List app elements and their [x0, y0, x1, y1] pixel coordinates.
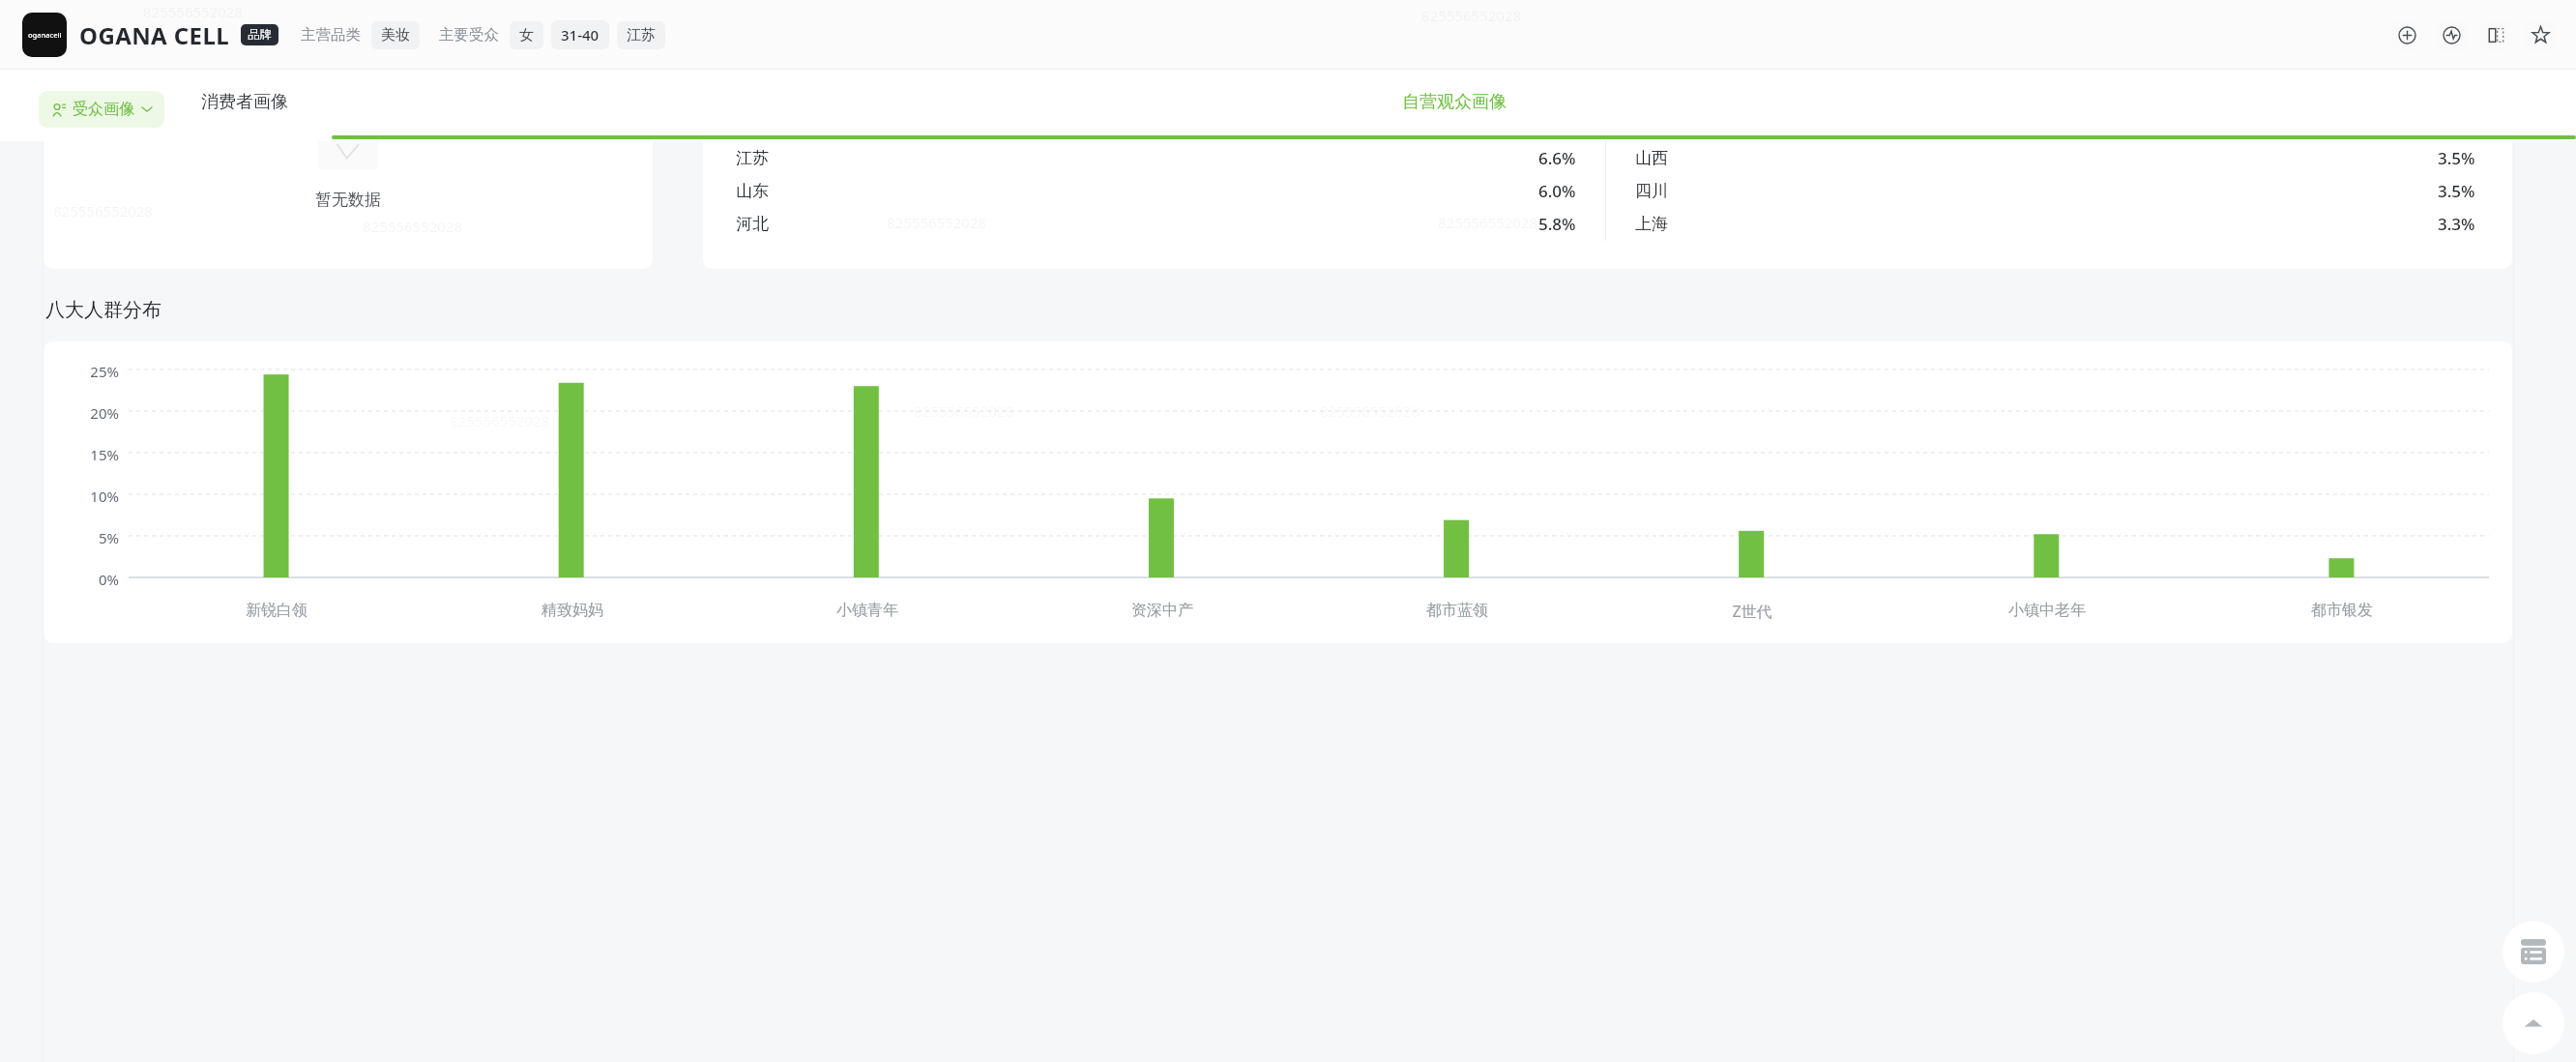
- button[interactable]: Add: [2391, 19, 2423, 51]
- staticText: 0%: [67, 570, 119, 589]
- staticText: 3.5%: [2438, 147, 2475, 169]
- staticText: 825556552028: [450, 411, 549, 430]
- button[interactable]: Compare: [2480, 19, 2512, 51]
- staticText: 资深中产: [1131, 601, 1193, 620]
- staticText: 上海: [1635, 214, 1668, 234]
- button[interactable]: Back to top: [2503, 992, 2564, 1054]
- button[interactable]: Trend: [2436, 19, 2468, 51]
- staticText: 自营观众画像: [1402, 91, 1507, 113]
- staticText: 主营品类: [301, 25, 361, 44]
- staticText: 825556552028: [1421, 6, 1521, 25]
- staticText: 825556552028: [914, 401, 1013, 421]
- staticText: 小镇中老年: [2008, 601, 2086, 620]
- staticText: OGANA CELL: [79, 19, 230, 51]
- button[interactable]: 美妆: [371, 21, 420, 49]
- button[interactable]: 受众画像: [39, 91, 164, 128]
- staticText: 10%: [67, 487, 119, 506]
- staticText: 3.3%: [2438, 213, 2475, 235]
- staticText: 825556552028: [1320, 401, 1420, 421]
- staticText: 6.6%: [1538, 147, 1576, 169]
- staticText: 825556552028: [53, 201, 153, 221]
- staticText: 15%: [67, 445, 119, 464]
- staticText: 消费者画像: [201, 91, 288, 113]
- staticText: 河北: [736, 214, 769, 234]
- staticText: oganacell: [28, 30, 62, 40]
- staticText: 品牌: [248, 27, 272, 43]
- button[interactable]: Favorite: [2525, 19, 2557, 51]
- button[interactable]: Catalog: [2503, 921, 2564, 983]
- staticText: 825556552028: [1438, 213, 1537, 232]
- staticText: 小镇青年: [836, 601, 898, 620]
- staticText: 受众画像: [73, 100, 134, 119]
- staticText: 5%: [67, 528, 119, 547]
- button[interactable]: 自营观众画像: [332, 91, 2576, 139]
- staticText: 江苏: [627, 26, 656, 44]
- staticText: 3.5%: [2438, 180, 2475, 202]
- staticText: 美妆: [381, 26, 410, 44]
- staticText: 四川: [1635, 181, 1668, 201]
- staticText: 山西: [1635, 148, 1668, 168]
- staticText: 20%: [67, 403, 119, 423]
- staticText: 山东: [736, 181, 769, 201]
- staticText: 25%: [67, 362, 119, 381]
- staticText: 6.0%: [1538, 180, 1576, 202]
- staticText: 精致妈妈: [542, 601, 603, 620]
- staticText: 825556552028: [143, 2, 243, 21]
- staticText: 江苏: [736, 148, 769, 168]
- button[interactable]: 消费者画像: [201, 91, 288, 139]
- button[interactable]: 女: [510, 21, 543, 49]
- staticText: 31-40: [561, 25, 600, 44]
- staticText: 新锐白领: [246, 601, 307, 620]
- staticText: 825556552028: [363, 217, 462, 236]
- staticText: 5.8%: [1538, 213, 1576, 235]
- staticText: 都市银发: [2311, 601, 2373, 620]
- staticText: Z世代: [1732, 601, 1772, 622]
- staticText: 都市蓝领: [1426, 601, 1488, 620]
- staticText: 八大人群分布: [45, 298, 161, 322]
- button[interactable]: 31-40: [551, 20, 609, 49]
- staticText: 主要受众: [439, 25, 499, 44]
- staticText: 825556552028: [887, 213, 986, 232]
- button[interactable]: 江苏: [617, 21, 665, 49]
- staticText: 暂无数据: [315, 190, 381, 210]
- staticText: 女: [519, 26, 534, 44]
